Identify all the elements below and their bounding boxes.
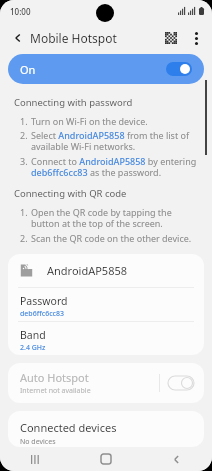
staticText: 1. [20, 115, 31, 127]
staticText: AndroidAP5858 [47, 263, 128, 278]
button[interactable]: Connected devices [8, 411, 204, 447]
button[interactable]: More options [184, 26, 208, 50]
staticText: 2.4 GHz [20, 343, 46, 353]
staticText: Connecting with QR code [14, 187, 127, 200]
button[interactable]: Back [141, 447, 212, 471]
staticText: Scan the QR code on the other device. [31, 232, 192, 244]
staticText: No devices [20, 437, 56, 447]
staticText: 3. [20, 155, 31, 167]
staticText: deb6ffc6cc83 [20, 309, 65, 319]
button[interactable]: Show QR code [158, 25, 184, 51]
staticText: Band [20, 328, 46, 342]
staticText: 10:00 [10, 6, 31, 17]
staticText: 2. [20, 232, 31, 244]
staticText: Password [20, 294, 68, 308]
staticText: Open the QR code by tapping the button a… [31, 206, 198, 230]
button[interactable]: AndroidAP5858 [8, 254, 204, 287]
staticText: Auto Hotspot [20, 370, 89, 385]
staticText: On [20, 62, 36, 77]
staticText: Mobile Hotspot [30, 30, 117, 46]
button[interactable]: Band [8, 322, 204, 355]
staticText: Connected devices [20, 420, 117, 435]
staticText: Connect to AndroidAP5858 by entering deb… [31, 155, 198, 179]
staticText: 2. [20, 129, 31, 141]
button[interactable]: Home [70, 447, 141, 471]
button[interactable]: Auto Hotspot [8, 363, 204, 403]
staticText: Internet not available [20, 386, 91, 396]
staticText: Turn on Wi-Fi on the device. [31, 115, 148, 127]
staticText: 1. [20, 206, 31, 218]
button[interactable]: On [8, 54, 204, 84]
staticText: Connecting with password [14, 96, 133, 109]
staticText: Select AndroidAP5858 from the list of av… [31, 129, 198, 153]
button[interactable]: Recents [0, 447, 70, 471]
button[interactable]: Password [8, 288, 204, 321]
button[interactable]: Back [6, 26, 30, 50]
